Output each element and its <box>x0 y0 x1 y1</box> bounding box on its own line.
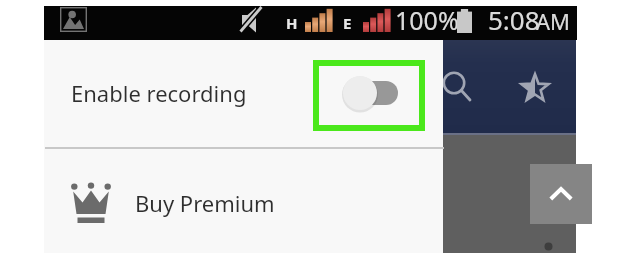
staticText: 100% <box>395 3 459 37</box>
staticText: H <box>286 13 298 33</box>
button[interactable]: Favorite <box>519 72 551 104</box>
button[interactable]: Enable recording <box>44 40 443 147</box>
button[interactable]: Enable recording toggle <box>337 70 403 116</box>
staticText: 5:08 <box>488 2 540 36</box>
button[interactable]: Buy Premium <box>44 149 443 253</box>
staticText: E <box>343 13 352 33</box>
staticText: Buy Premium <box>135 188 275 218</box>
staticText: AM <box>536 6 571 36</box>
button[interactable]: Search <box>441 70 473 102</box>
staticText: Enable recording <box>71 78 247 108</box>
button[interactable]: Scroll to top <box>530 164 592 224</box>
